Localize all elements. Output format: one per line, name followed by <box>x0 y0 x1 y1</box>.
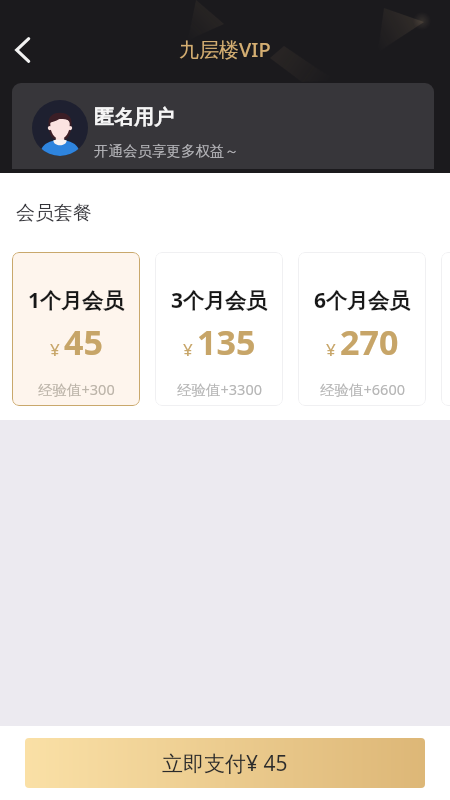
staticText: 经验值+300 <box>38 379 115 399</box>
staticText: 经验值+6600 <box>320 379 405 399</box>
staticText: 135 <box>197 319 256 365</box>
staticText: 九层楼VIP <box>179 36 271 63</box>
staticText: ¥ <box>326 338 336 361</box>
button[interactable]: 立即支付¥ 45 <box>25 738 425 788</box>
button[interactable]: 6个月会员 <box>298 252 426 406</box>
staticText: 270 <box>340 319 399 365</box>
button[interactable]: 3个月会员 <box>155 252 283 406</box>
staticText: ¥ <box>50 338 60 361</box>
staticText: 6个月会员 <box>314 286 411 315</box>
button[interactable]: 1个月会员 <box>12 252 140 406</box>
staticText: 立即支付¥ 45 <box>162 749 288 778</box>
button[interactable]: 匿名用户 <box>12 83 434 169</box>
staticText: 1个月会员 <box>28 286 125 315</box>
button[interactable]: Back <box>0 27 46 73</box>
staticText: ¥ <box>183 338 193 361</box>
staticText: 开通会员享更多权益～ <box>94 142 239 160</box>
staticText: 匿名用户 <box>94 105 174 130</box>
staticText: 3个月会员 <box>171 286 268 315</box>
staticText: 会员套餐 <box>16 201 92 225</box>
staticText: 经验值+3300 <box>177 379 262 399</box>
staticText: 45 <box>64 319 103 365</box>
button[interactable]: 12个月会员 <box>441 252 450 406</box>
